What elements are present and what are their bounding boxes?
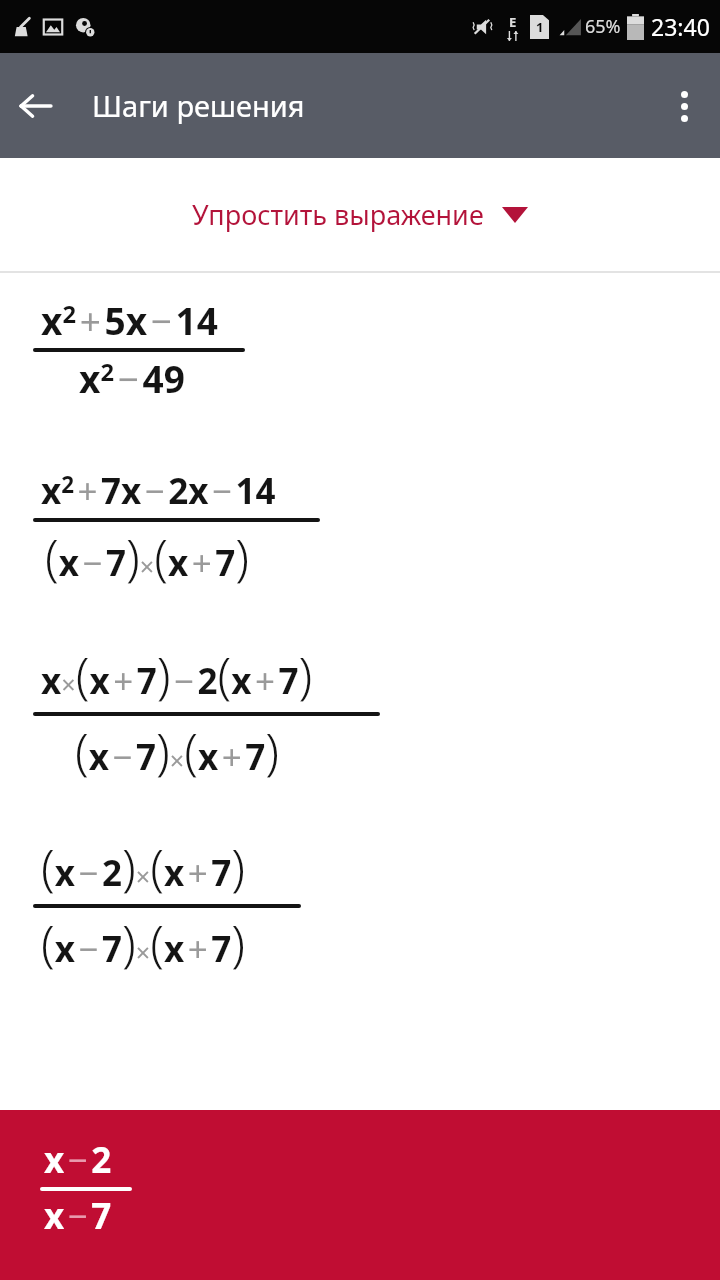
staticText: (x − 2)×(x + 7) bbox=[41, 833, 246, 901]
staticText: (x − 7)×(x + 7) bbox=[75, 717, 280, 785]
staticText: x×(x + 7) − 2(x + 7) bbox=[41, 641, 313, 709]
staticText: 1 bbox=[536, 18, 544, 36]
staticText: 65% bbox=[585, 14, 621, 39]
staticText: x2 − 49 bbox=[79, 353, 185, 403]
button[interactable]: x − 2 bbox=[0, 1110, 720, 1280]
button[interactable]: Упростить выражение bbox=[0, 158, 720, 271]
staticText: x − 7 bbox=[44, 1192, 112, 1240]
button[interactable]: Back bbox=[0, 70, 72, 142]
staticText: Шаги решения bbox=[92, 86, 305, 125]
staticText: Упростить выражение bbox=[192, 196, 484, 233]
staticText: E bbox=[509, 13, 517, 31]
button[interactable]: More options bbox=[648, 70, 720, 142]
staticText: x2 + 5x − 14 bbox=[41, 295, 218, 345]
staticText: x2 + 7x − 2x − 14 bbox=[41, 467, 276, 515]
staticText: (x − 7)×(x + 7) bbox=[41, 909, 246, 977]
staticText: x − 2 bbox=[44, 1136, 112, 1184]
staticText: 23:40 bbox=[651, 11, 710, 42]
staticText: (x − 7)×(x + 7) bbox=[45, 523, 250, 591]
